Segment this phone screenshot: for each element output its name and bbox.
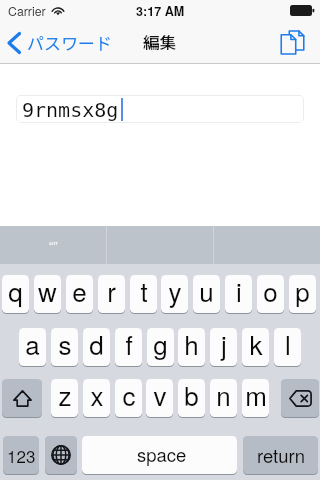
button[interactable]: e: [66, 275, 93, 313]
staticText: t: [140, 275, 148, 309]
button[interactable]: o: [257, 275, 284, 313]
staticText: j: [221, 328, 227, 362]
staticText: パスワード: [27, 30, 112, 55]
staticText: a: [25, 328, 40, 362]
button[interactable]: m: [242, 379, 269, 417]
staticText: n: [216, 379, 231, 413]
staticText: 編集: [143, 30, 177, 54]
staticText: v: [153, 379, 167, 413]
button[interactable]: x: [83, 379, 110, 417]
staticText: l: [285, 328, 291, 362]
button[interactable]: Backspace: [281, 379, 319, 417]
button[interactable]: Copy: [271, 31, 320, 54]
button[interactable]: return: [243, 436, 318, 474]
button[interactable]: f: [115, 328, 142, 366]
button[interactable]: v: [146, 379, 173, 417]
staticText: y: [168, 275, 182, 309]
staticText: 9rnmsx8g: [22, 98, 119, 121]
button[interactable]: s: [51, 328, 78, 366]
button[interactable]: d: [83, 328, 110, 366]
staticText: r: [107, 275, 116, 309]
button[interactable]: h: [178, 328, 205, 366]
staticText: 123: [7, 443, 36, 467]
button[interactable]: w: [34, 275, 61, 313]
staticText: Carrier: [8, 2, 46, 20]
staticText: o: [263, 275, 278, 309]
button[interactable]: a: [19, 328, 46, 366]
staticText: e: [72, 275, 87, 309]
staticText: d: [89, 328, 104, 362]
button[interactable]: n: [210, 379, 237, 417]
staticText: space: [137, 441, 187, 467]
staticText: m: [245, 379, 267, 413]
staticText: “”: [49, 236, 58, 255]
button[interactable]: p: [289, 275, 316, 313]
button[interactable]: l: [274, 328, 301, 366]
button[interactable]: j: [210, 328, 237, 366]
staticText: k: [249, 328, 263, 362]
button[interactable]: c: [115, 379, 142, 417]
staticText: b: [184, 379, 199, 413]
button[interactable]: r: [98, 275, 125, 313]
staticText: c: [122, 379, 136, 413]
button[interactable]: y: [161, 275, 188, 313]
staticText: s: [58, 328, 72, 362]
staticText: f: [125, 328, 133, 362]
staticText: p: [295, 275, 310, 309]
staticText: z: [58, 379, 72, 413]
button[interactable]: 123: [3, 436, 39, 474]
button[interactable]: z: [51, 379, 78, 417]
button[interactable]: Shift: [2, 379, 42, 417]
button[interactable]: t: [130, 275, 157, 313]
staticText: x: [90, 379, 104, 413]
button[interactable]: b: [178, 379, 205, 417]
button[interactable]: i: [225, 275, 252, 313]
button[interactable]: u: [193, 275, 220, 313]
button[interactable]: g: [147, 328, 174, 366]
button[interactable]: 9rnmsx8g: [16, 95, 304, 123]
staticText: g: [153, 328, 168, 362]
staticText: w: [38, 275, 57, 309]
button[interactable]: space: [82, 436, 237, 474]
staticText: i: [236, 275, 242, 309]
button[interactable]: k: [242, 328, 269, 366]
staticText: h: [184, 328, 199, 362]
button[interactable]: Switch keyboard: [45, 436, 77, 474]
button[interactable]: パスワード: [0, 30, 118, 55]
button[interactable]: q: [2, 275, 29, 313]
staticText: q: [8, 275, 23, 309]
staticText: u: [199, 275, 214, 309]
staticText: 3:17 AM: [136, 2, 185, 20]
staticText: return: [257, 442, 305, 468]
